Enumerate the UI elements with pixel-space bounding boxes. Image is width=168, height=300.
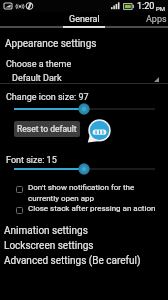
- staticText: Close stack after pressing an action: [28, 204, 156, 213]
- button[interactable]: Animation settings: [4, 225, 88, 237]
- button[interactable]: General: [56, 12, 112, 26]
- staticText: Choose a theme: [6, 59, 72, 70]
- button[interactable]: Lockscreen settings: [4, 240, 94, 252]
- staticText: Font size: 15: [6, 155, 57, 166]
- staticText: Default Dark: [12, 73, 62, 84]
- staticText: Change icon size: 97: [6, 92, 89, 103]
- staticText: PM: [156, 5, 166, 12]
- button[interactable]: [0, 163, 168, 175]
- other: Pointer: [86, 117, 114, 145]
- button[interactable]: Apps: [135, 12, 168, 26]
- staticText: Reset to default: [17, 124, 77, 134]
- staticText: Appearance settings: [5, 38, 97, 50]
- button[interactable]: Close stack after pressing an action: [0, 204, 168, 213]
- button[interactable]: [0, 103, 168, 115]
- staticText: General: [69, 14, 100, 25]
- staticText: 1:20: [137, 1, 155, 12]
- button[interactable]: Advanced settings (Be careful): [4, 255, 141, 267]
- button[interactable]: Don't show notification for the currentl…: [0, 183, 168, 203]
- button[interactable]: Default Dark: [0, 68, 168, 84]
- staticText: Don't show notification for the currentl…: [28, 183, 135, 203]
- button[interactable]: Reset to default: [14, 121, 80, 137]
- staticText: Apps: [146, 14, 167, 25]
